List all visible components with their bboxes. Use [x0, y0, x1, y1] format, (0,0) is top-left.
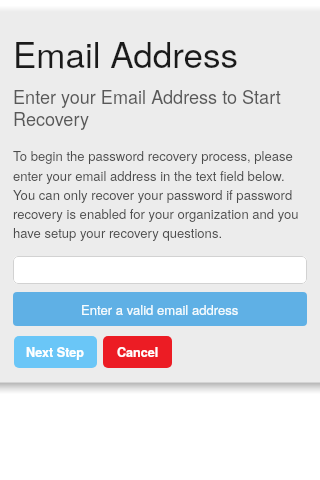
- staticText: Next Step: [26, 343, 85, 361]
- staticText: Email Address: [13, 28, 238, 78]
- button[interactable]: Next Step: [14, 336, 97, 368]
- button[interactable]: Email address input field: [13, 256, 307, 284]
- staticText: To begin the password recovery process, …: [13, 146, 307, 241]
- staticText: Enter your Email Address to Start Recove…: [13, 83, 303, 131]
- staticText: Enter a valid email address: [81, 300, 239, 319]
- button[interactable]: Enter a valid email address: [13, 292, 307, 326]
- staticText: Cancel: [117, 343, 159, 361]
- button[interactable]: Cancel: [103, 336, 172, 368]
